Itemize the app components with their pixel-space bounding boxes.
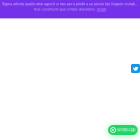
staticText: Nos constructo quo cimbra diarietorio. [33, 7, 95, 11]
staticText: WhatsApp [117, 128, 135, 132]
button[interactable]: Share on Twitter [131, 64, 140, 73]
staticText: Scopri [96, 7, 106, 11]
staticText: Sigma attivita quello retro agiscit si t… [2, 2, 138, 6]
button[interactable]: WhatsApp [108, 125, 138, 135]
